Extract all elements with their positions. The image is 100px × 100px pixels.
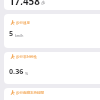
button[interactable]: 歩行両脚支持時間: [4, 88, 100, 100]
staticText: 歩行非対称性: [16, 55, 37, 59]
staticText: %: [25, 71, 29, 76]
staticText: 歩行両脚支持時間: [16, 91, 44, 95]
button[interactable]: 歩行非対称性: [4, 52, 100, 84]
staticText: 歩: [41, 0, 46, 5]
staticText: km/h: [15, 33, 24, 38]
staticText: 5: [9, 28, 14, 38]
button[interactable]: 歩行速度: [4, 14, 100, 48]
staticText: 歩行速度: [16, 21, 30, 25]
staticText: 0.36: [9, 66, 24, 76]
staticText: 17,458: [9, 0, 40, 5]
button[interactable]: 17,458: [4, 0, 100, 10]
